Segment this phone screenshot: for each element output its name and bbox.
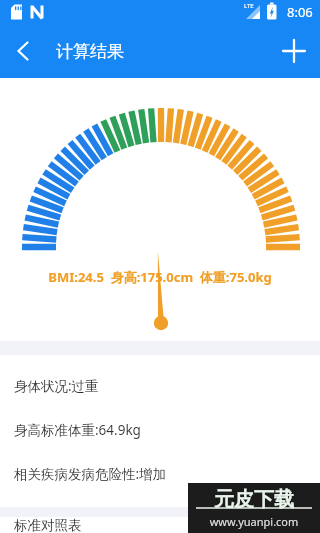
button[interactable]: 身高标准体重:64.9kg	[0, 421, 320, 439]
button[interactable]: 身体状况:过重	[0, 377, 320, 395]
staticText: 标准对照表	[14, 517, 82, 533]
staticText: LTE	[244, 2, 254, 10]
button[interactable]: 标准对照表	[0, 517, 320, 533]
staticText: 计算结果	[56, 41, 124, 62]
button[interactable]: Back	[0, 28, 46, 74]
button[interactable]: Add	[268, 25, 320, 77]
staticText: 元皮下载	[214, 487, 294, 512]
staticText: 身高标准体重:64.9kg	[14, 421, 141, 439]
button[interactable]: 相关疾病发病危险性:增加	[0, 465, 320, 483]
staticText: www.yuanpi.com	[188, 514, 320, 529]
staticText: 8:06	[287, 3, 313, 21]
staticText: 身体状况:过重	[14, 377, 99, 395]
staticText: BMI:24.5 身高:175.0cm 体重:75.0kg	[0, 268, 320, 286]
staticText: 相关疾病发病危险性:增加	[14, 465, 167, 483]
